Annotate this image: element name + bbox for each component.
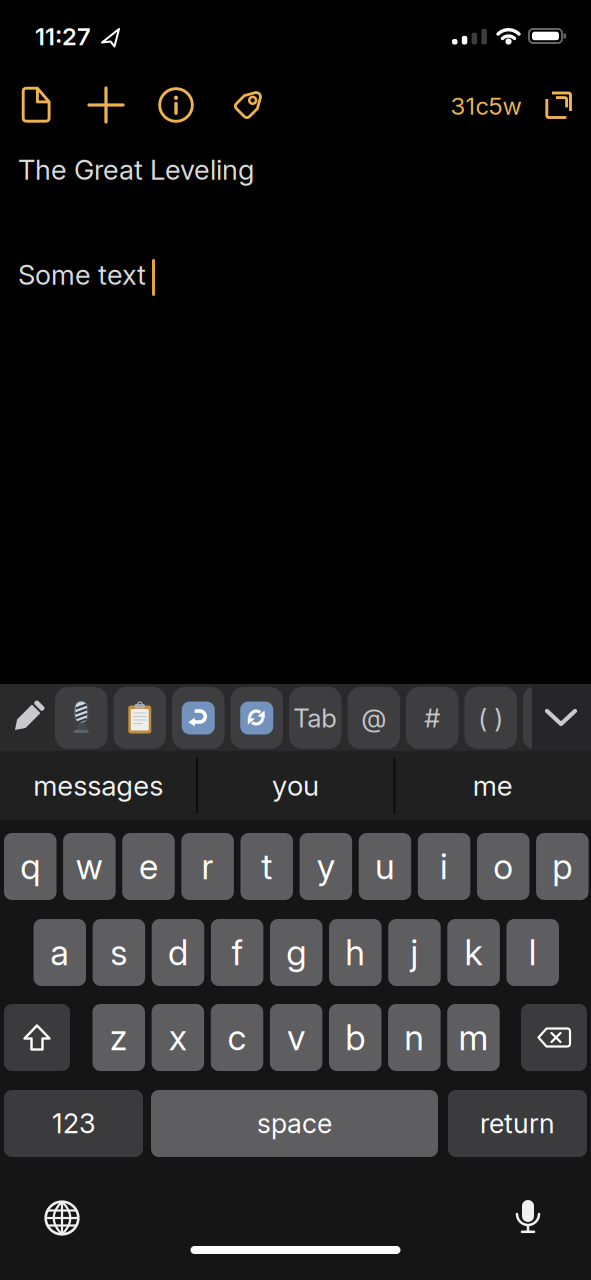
button[interactable]: Paste: [113, 687, 166, 749]
button[interactable]: messages: [33, 769, 163, 802]
button[interactable]: q: [4, 833, 56, 900]
button[interactable]: #: [406, 687, 458, 749]
button[interactable]: Info: [0, 0, 44, 50]
button[interactable]: Shift: [4, 1004, 70, 1071]
staticText: Some text: [18, 258, 146, 291]
button[interactable]: Documents: [0, 0, 44, 50]
staticText: l: [529, 931, 537, 974]
staticText: j: [410, 931, 418, 974]
button[interactable]: t: [240, 833, 293, 900]
staticText: messages: [33, 769, 163, 802]
button[interactable]: return: [448, 1090, 587, 1157]
button[interactable]: o: [477, 833, 529, 900]
staticText: f: [232, 931, 243, 974]
button[interactable]: @: [347, 687, 400, 749]
staticText: o: [493, 845, 513, 888]
button[interactable]: b: [329, 1004, 381, 1071]
button[interactable]: a: [33, 919, 86, 986]
button[interactable]: 31c5w: [450, 91, 521, 120]
button[interactable]: x: [152, 1004, 204, 1071]
button[interactable]: z: [92, 1004, 145, 1071]
button[interactable]: you: [272, 769, 319, 802]
staticText: a: [50, 931, 69, 974]
staticText: z: [110, 1016, 128, 1059]
button[interactable]: p: [536, 833, 589, 900]
staticText: t: [261, 845, 272, 888]
button[interactable]: y: [300, 833, 352, 900]
button[interactable]: h: [329, 919, 382, 986]
staticText: h: [345, 931, 365, 974]
staticText: 123: [52, 1107, 95, 1140]
button[interactable]: r: [181, 833, 234, 900]
button[interactable]: s: [93, 919, 145, 986]
staticText: return: [480, 1107, 555, 1140]
button[interactable]: Dictate: [55, 687, 107, 749]
staticText: 31c5w: [450, 91, 521, 120]
button[interactable]: Delete: [521, 1004, 587, 1071]
button[interactable]: Next keyboard: [42, 1198, 82, 1238]
button[interactable]: 123: [4, 1090, 143, 1157]
button[interactable]: v: [270, 1004, 322, 1071]
button[interactable]: e: [122, 833, 175, 900]
button[interactable]: n: [388, 1004, 441, 1071]
staticText: w: [76, 845, 103, 888]
staticText: x: [169, 1016, 187, 1059]
staticText: you: [272, 769, 319, 802]
button[interactable]: Dictation: [513, 1198, 543, 1238]
staticText: g: [286, 931, 306, 974]
staticText: q: [20, 845, 40, 888]
button[interactable]: Dismiss keyboard: [534, 706, 588, 730]
staticText: me: [473, 769, 513, 802]
button[interactable]: Redo: [230, 687, 283, 749]
staticText: n: [404, 1016, 424, 1059]
button[interactable]: w: [63, 833, 116, 900]
button[interactable]: Tab: [289, 687, 341, 749]
button[interactable]: d: [152, 919, 204, 986]
staticText: c: [227, 1016, 246, 1059]
staticText: ( ): [478, 702, 503, 734]
button[interactable]: f: [211, 919, 263, 986]
staticText: y: [317, 845, 335, 888]
staticText: e: [139, 845, 158, 888]
button[interactable]: j: [388, 919, 441, 986]
button[interactable]: ( ): [464, 687, 517, 749]
staticText: k: [465, 931, 483, 974]
staticText: s: [110, 931, 127, 974]
button[interactable]: g: [270, 919, 322, 986]
staticText: b: [345, 1016, 365, 1059]
button[interactable]: k: [447, 919, 500, 986]
button[interactable]: Edit: [7, 697, 47, 739]
staticText: space: [257, 1107, 332, 1140]
button[interactable]: Undo: [172, 687, 224, 749]
staticText: 11:27: [35, 22, 91, 51]
staticText: p: [552, 845, 572, 888]
button[interactable]: l: [506, 919, 559, 986]
staticText: Tab: [293, 702, 337, 734]
button[interactable]: me: [473, 769, 513, 802]
staticText: i: [440, 845, 448, 888]
staticText: u: [375, 845, 395, 888]
staticText: m: [458, 1016, 488, 1059]
staticText: d: [168, 931, 188, 974]
staticText: @: [361, 702, 386, 734]
staticText: #: [424, 702, 440, 734]
button[interactable]: i: [418, 833, 470, 900]
button[interactable]: u: [359, 833, 411, 900]
button[interactable]: c: [211, 1004, 263, 1071]
button[interactable]: Preview: [0, 0, 36, 44]
button[interactable]: space: [151, 1090, 438, 1157]
staticText: r: [202, 845, 214, 888]
staticText: v: [287, 1016, 305, 1059]
button[interactable]: Tags: [0, 0, 44, 50]
button[interactable]: m: [447, 1004, 500, 1071]
staticText: The Great Leveling: [18, 153, 254, 186]
button[interactable]: New note: [0, 0, 44, 50]
